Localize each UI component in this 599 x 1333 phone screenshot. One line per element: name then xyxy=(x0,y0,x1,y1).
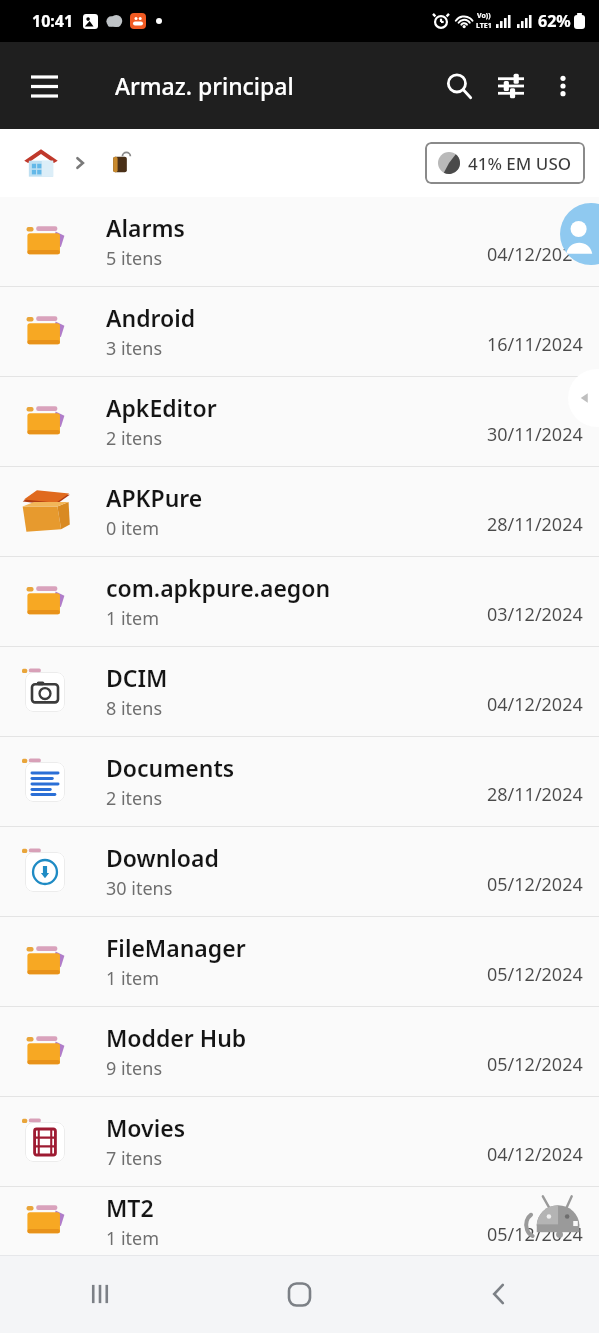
button[interactable]: Alarms xyxy=(0,197,599,286)
button[interactable]: Home xyxy=(18,140,64,186)
staticText: 05/12/2024 xyxy=(487,872,583,897)
staticText: 30/11/2024 xyxy=(487,422,583,447)
button[interactable]: ApkEditor xyxy=(0,377,599,466)
staticText: Movies xyxy=(106,1112,185,1143)
button[interactable]: DCIM xyxy=(0,647,599,736)
staticText: 04/12/2024 xyxy=(487,1142,583,1167)
button[interactable]: APKPure xyxy=(0,467,599,556)
staticText: 2 itens xyxy=(106,426,163,451)
staticText: 10:41 xyxy=(32,10,74,32)
staticText: 30 itens xyxy=(106,876,173,901)
staticText: 0 item xyxy=(106,516,160,541)
staticText: 05/12/2024 xyxy=(487,962,583,987)
staticText: 28/11/2024 xyxy=(487,512,583,537)
staticText: Android xyxy=(106,302,196,333)
staticText: Documents xyxy=(106,752,235,783)
staticText: ApkEditor xyxy=(106,392,217,423)
staticText: DCIM xyxy=(106,662,168,693)
button[interactable]: MT2 xyxy=(0,1187,599,1255)
button[interactable]: Documents xyxy=(0,737,599,826)
staticText: 5 itens xyxy=(106,246,163,271)
staticText: Armaz. principal xyxy=(115,70,294,101)
staticText: Download xyxy=(106,842,219,873)
staticText: 04/12/2024 xyxy=(487,242,583,267)
staticText: 16/11/2024 xyxy=(487,332,583,357)
button[interactable]: FileManager xyxy=(0,917,599,1006)
staticText: Modder Hub xyxy=(106,1022,247,1053)
button[interactable]: Android xyxy=(0,287,599,376)
staticText: APKPure xyxy=(106,482,203,513)
staticText: 03/12/2024 xyxy=(487,602,583,627)
staticText: 04/12/2024 xyxy=(487,692,583,717)
staticText: MT2 xyxy=(106,1192,154,1223)
staticText: 05/12/2024 xyxy=(487,1052,583,1077)
button[interactable]: Download xyxy=(0,827,599,916)
staticText: 05/12/2024 xyxy=(487,1222,583,1247)
button[interactable]: Recent apps xyxy=(0,1255,199,1333)
button[interactable]: Menu xyxy=(18,60,70,112)
staticText: 1 item xyxy=(106,606,160,631)
staticText: 2 itens xyxy=(106,786,163,811)
staticText: LTE1 xyxy=(476,21,492,31)
button[interactable]: Movies xyxy=(0,1097,599,1186)
button[interactable]: Search xyxy=(433,60,485,112)
staticText: Alarms xyxy=(106,212,185,243)
staticText: 8 itens xyxy=(106,696,163,721)
staticText: 28/11/2024 xyxy=(487,782,583,807)
staticText: 9 itens xyxy=(106,1056,163,1081)
button[interactable]: Sort options xyxy=(485,60,537,112)
button[interactable]: Internal storage xyxy=(102,143,142,183)
staticText: FileManager xyxy=(106,932,246,963)
button[interactable]: More options xyxy=(537,60,589,112)
button[interactable]: Back xyxy=(399,1255,599,1333)
staticText: Vo)) xyxy=(477,11,491,21)
staticText: 41% EM USO xyxy=(468,152,572,175)
staticText: 1 item xyxy=(106,966,160,991)
staticText: 7 itens xyxy=(106,1146,163,1171)
button[interactable]: com.apkpure.aegon xyxy=(0,557,599,646)
staticText: 62% xyxy=(538,10,571,32)
staticText: 3 itens xyxy=(106,336,163,361)
staticText: 1 item xyxy=(106,1226,160,1251)
button[interactable]: Home xyxy=(199,1255,399,1333)
button[interactable]: 41% EM USO xyxy=(425,142,585,184)
button[interactable]: Modder Hub xyxy=(0,1007,599,1096)
staticText: com.apkpure.aegon xyxy=(106,572,331,603)
